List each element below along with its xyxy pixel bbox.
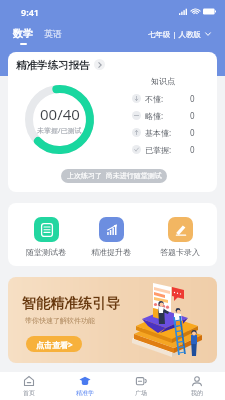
button[interactable]: 随堂测试卷 [21,217,71,257]
staticText: 上次练习了 尚未进行随堂测试 [67,171,162,181]
staticText: 精准学 [76,389,94,397]
staticText: 不懂: [145,93,164,104]
staticText: 已掌握: [145,144,172,155]
staticText: 七年级 | 人教版 [148,29,202,39]
staticText: 略懂: [145,110,164,121]
button[interactable]: 数学 [13,27,33,45]
button[interactable]: 精准学 [57,372,113,400]
staticText: 00/40 [40,104,80,124]
staticText: 0 [190,110,195,121]
staticText: 我的 [191,389,203,397]
staticText: 0 [190,127,195,138]
button[interactable]: 智能精准练引导 [8,277,217,363]
staticText: 英语 [44,28,62,39]
staticText: 广场 [135,389,147,397]
staticText: 基本懂: [145,127,172,138]
button[interactable]: 广场 [113,372,169,400]
staticText: 9:41 [21,6,39,18]
staticText: 0 [190,144,195,155]
button[interactable]: 我的 [169,372,225,400]
staticText: 带你快速了解软件功能 [25,316,95,325]
button[interactable]: 查看练习报告 [94,59,105,70]
button[interactable]: 点击查看> [26,336,82,352]
staticText: 精准提升卷 [91,247,131,257]
staticText: 随堂测试卷 [26,247,66,257]
staticText: 精准学练习报告 [16,59,90,72]
button[interactable]: 精准提升卷 [86,217,136,257]
staticText: 答题卡录入 [160,247,200,257]
button[interactable]: 上次练习了 尚未进行随堂测试 [61,169,167,183]
staticText: 首页 [23,389,35,397]
button[interactable]: 英语 [44,28,62,39]
staticText: 点击查看> [36,339,73,350]
button[interactable]: 七年级 | 人教版 [148,29,211,39]
staticText: 智能精准练引导 [22,295,120,313]
staticText: 知识点 [151,76,175,86]
staticText: 未掌握/已测试 [37,126,82,136]
staticText: 数学 [13,27,33,40]
button[interactable]: 首页 [0,372,57,400]
staticText: 0 [190,93,195,104]
button[interactable]: 答题卡录入 [155,217,205,257]
